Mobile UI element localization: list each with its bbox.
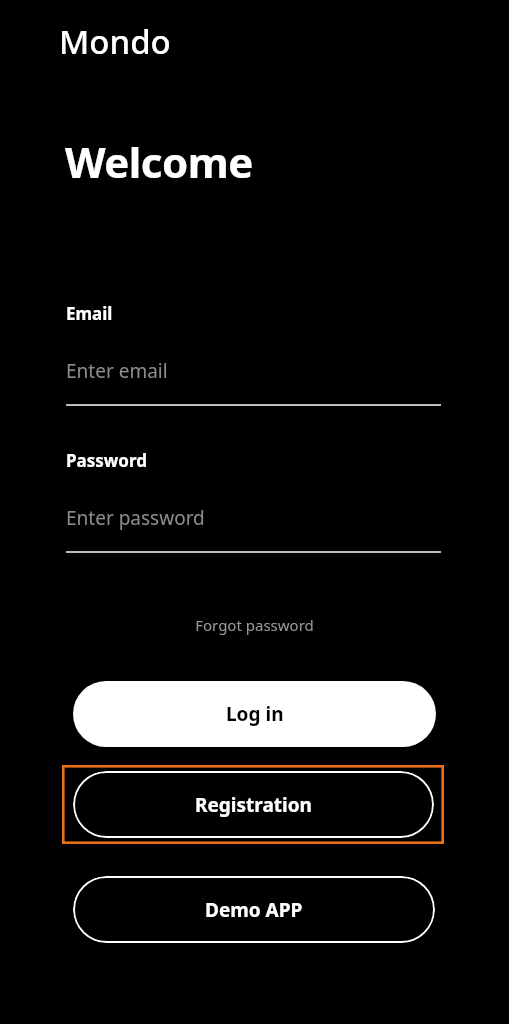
button[interactable]: Registration (73, 771, 434, 838)
staticText: Forgot password (195, 615, 314, 635)
staticText: Email (66, 302, 113, 325)
staticText: Registration (195, 792, 312, 818)
staticText: Welcome (65, 133, 253, 190)
button[interactable]: Enter email (66, 352, 441, 406)
button[interactable]: Log in (73, 681, 436, 747)
staticText: Enter email (66, 358, 168, 384)
staticText: Mondo (59, 19, 171, 64)
staticText: Enter password (66, 505, 205, 531)
button[interactable]: Enter password (66, 499, 441, 553)
button[interactable]: Forgot password (180, 612, 328, 638)
staticText: Log in (226, 701, 284, 727)
staticText: Password (66, 449, 147, 472)
staticText: Demo APP (205, 897, 303, 923)
button[interactable]: Demo APP (73, 876, 435, 943)
